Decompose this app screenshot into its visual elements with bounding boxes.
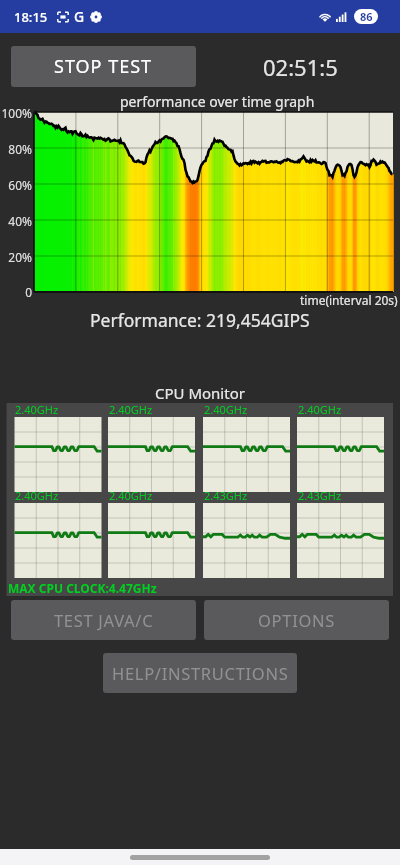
staticText: 2.40GHz bbox=[15, 402, 59, 417]
staticText: 18:15 bbox=[14, 8, 48, 26]
button[interactable]: HELP/INSTRUCTIONS bbox=[103, 653, 297, 693]
staticText: 100% bbox=[0, 105, 32, 121]
staticText: 2.43GHz bbox=[204, 488, 248, 503]
staticText: TEST JAVA/C bbox=[54, 609, 154, 631]
staticText: 02:51:5 bbox=[263, 52, 338, 82]
staticText: 60% bbox=[0, 177, 32, 193]
button[interactable]: TEST JAVA/C bbox=[11, 600, 196, 640]
staticText: 2.40GHz bbox=[298, 402, 342, 417]
staticText: MAX CPU CLOCK:4.47GHz bbox=[8, 580, 157, 596]
staticText: 2.40GHz bbox=[204, 402, 248, 417]
staticText: HELP/INSTRUCTIONS bbox=[112, 662, 289, 684]
staticText: 2.40GHz bbox=[109, 402, 153, 417]
staticText: OPTIONS bbox=[258, 609, 336, 631]
staticText: 20% bbox=[0, 249, 32, 265]
other: Home bbox=[130, 855, 270, 860]
staticText: G bbox=[74, 7, 85, 26]
staticText: 2.43GHz bbox=[298, 488, 342, 503]
staticText: performance over time graph bbox=[120, 92, 315, 111]
staticText: 2.40GHz bbox=[15, 488, 59, 503]
staticText: CPU Monitor bbox=[155, 383, 245, 403]
staticText: Performance: 219,454GIPS bbox=[90, 308, 310, 332]
button[interactable]: OPTIONS bbox=[204, 600, 389, 640]
staticText: time(interval 20s) bbox=[300, 292, 398, 308]
button[interactable]: STOP TEST bbox=[11, 46, 196, 87]
staticText: 40% bbox=[0, 213, 32, 229]
staticText: 86 bbox=[360, 9, 373, 24]
staticText: 2.40GHz bbox=[109, 488, 153, 503]
staticText: 80% bbox=[0, 141, 32, 157]
staticText: STOP TEST bbox=[54, 54, 153, 79]
staticText: 0 bbox=[0, 284, 32, 300]
